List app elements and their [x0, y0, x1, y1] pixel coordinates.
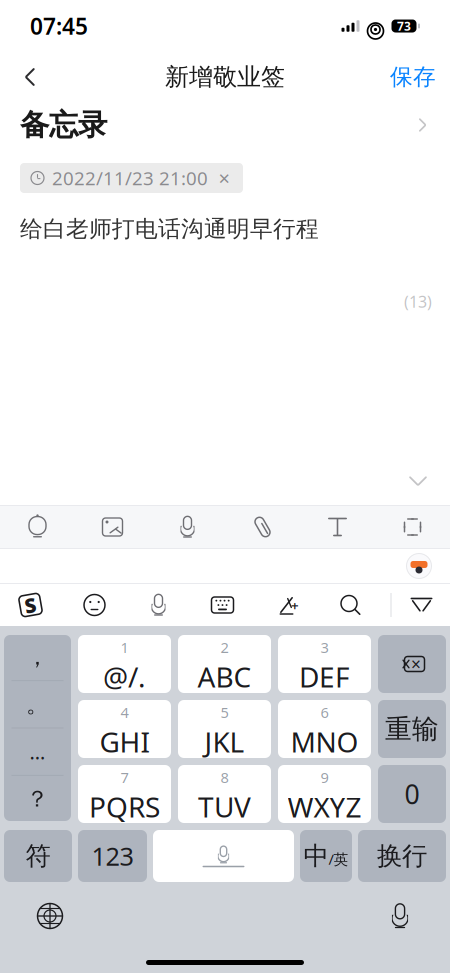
- staticText: 。: [26, 690, 49, 718]
- button[interactable]: …: [4, 728, 71, 775]
- button[interactable]: 9: [278, 765, 371, 823]
- staticText: 6: [320, 703, 328, 722]
- staticText: WXYZ: [287, 788, 361, 825]
- button[interactable]: ，: [4, 634, 71, 680]
- staticText: PQRS: [89, 788, 160, 825]
- staticText: 5: [220, 703, 228, 722]
- staticText: 符: [25, 840, 50, 871]
- button[interactable]: Space, voice input: [153, 830, 294, 882]
- button[interactable]: 5: [178, 700, 271, 758]
- button[interactable]: Delete: [378, 635, 446, 693]
- staticText: 给白老师打电话沟通明早行程: [20, 215, 319, 243]
- staticText: JKL: [204, 723, 244, 760]
- button[interactable]: 4: [78, 700, 171, 758]
- staticText: 2: [220, 638, 228, 657]
- button[interactable]: 换行: [358, 830, 446, 882]
- button[interactable]: Keyboard layout: [190, 584, 254, 626]
- button[interactable]: ？: [4, 776, 71, 822]
- staticText: ？: [26, 785, 49, 813]
- button[interactable]: Emoji: [62, 584, 126, 626]
- staticText: 换行: [377, 840, 427, 871]
- button[interactable]: Text format: [300, 505, 375, 549]
- button[interactable]: Voice input: [150, 505, 225, 549]
- staticText: 123: [91, 839, 133, 873]
- staticText: TUV: [198, 788, 251, 825]
- button[interactable]: Remove reminder: [215, 166, 233, 190]
- button[interactable]: Switch keyboard: [24, 890, 76, 942]
- staticText: (13): [404, 291, 432, 312]
- staticText: 新增敬业签: [165, 62, 285, 92]
- staticText: ×: [411, 652, 421, 675]
- staticText: ，: [26, 643, 49, 671]
- button[interactable]: Sogou menu: [0, 584, 62, 626]
- button[interactable]: 7: [78, 765, 171, 823]
- staticText: 73: [397, 18, 411, 34]
- staticText: DEF: [299, 658, 350, 695]
- staticText: MNO: [290, 723, 358, 760]
- button[interactable]: Full screen: [375, 505, 450, 549]
- staticText: 07:45: [30, 11, 88, 41]
- staticText: 备忘录: [20, 107, 107, 143]
- button[interactable]: Back: [8, 55, 52, 99]
- staticText: 9: [320, 768, 328, 787]
- staticText: 保存: [390, 63, 436, 91]
- staticText: 1: [120, 638, 128, 657]
- button[interactable]: 保存: [384, 55, 442, 99]
- button[interactable]: Attach file: [225, 505, 300, 549]
- button[interactable]: Collapse: [398, 463, 438, 499]
- staticText: 4: [120, 703, 128, 722]
- button[interactable]: 1: [78, 635, 171, 693]
- staticText: S: [24, 592, 36, 618]
- staticText: 3: [320, 638, 328, 657]
- button[interactable]: Hide keyboard: [391, 584, 450, 626]
- staticText: ABC: [197, 658, 251, 695]
- button[interactable]: 符: [4, 830, 72, 882]
- button[interactable]: 8: [178, 765, 271, 823]
- staticText: +: [291, 596, 299, 614]
- staticText: /英: [328, 849, 348, 869]
- button[interactable]: Voice input: [126, 584, 190, 626]
- button[interactable]: 。: [4, 681, 71, 728]
- staticText: 重输: [385, 713, 439, 745]
- staticText: ×: [218, 165, 229, 191]
- staticText: GHI: [99, 723, 149, 760]
- button[interactable]: 2: [178, 635, 271, 693]
- staticText: @/.: [103, 658, 146, 695]
- button[interactable]: 重输: [378, 700, 446, 758]
- staticText: 中: [303, 840, 328, 871]
- button[interactable]: 0: [378, 765, 446, 823]
- button[interactable]: Search: [318, 584, 382, 626]
- button[interactable]: 备忘录: [0, 101, 450, 149]
- button[interactable]: 6: [278, 700, 371, 758]
- button[interactable]: 3: [278, 635, 371, 693]
- button[interactable]: Dictation: [374, 890, 426, 942]
- button[interactable]: Add image: [75, 505, 150, 549]
- staticText: 7: [120, 768, 128, 787]
- staticText: …: [29, 738, 45, 765]
- button[interactable]: 中: [300, 830, 352, 882]
- button[interactable]: Reminder: [0, 505, 75, 549]
- staticText: 2022/11/23 21:00: [52, 166, 208, 190]
- button[interactable]: Handwriting: [254, 584, 318, 626]
- button[interactable]: 123: [78, 830, 147, 882]
- staticText: 8: [220, 768, 228, 787]
- staticText: 0: [404, 776, 419, 812]
